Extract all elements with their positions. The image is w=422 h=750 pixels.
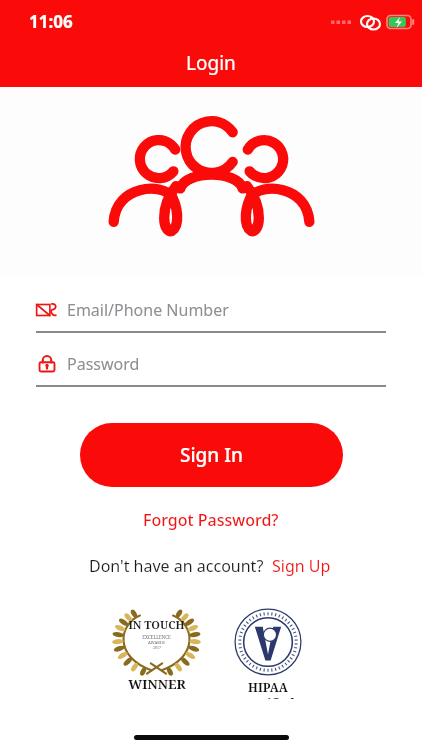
button[interactable]: Sign Up bbox=[270, 553, 333, 579]
staticText: IN TOUCH bbox=[128, 617, 185, 632]
button[interactable]: Email/Phone Number bbox=[36, 293, 386, 333]
button[interactable]: Password bbox=[36, 347, 386, 387]
button[interactable]: Sign In bbox=[80, 423, 343, 487]
staticText: EXCELLENCE bbox=[142, 634, 171, 640]
staticText: Email/Phone Number bbox=[67, 299, 229, 321]
staticText: Don't have an account? bbox=[89, 555, 264, 577]
other: In Touch Excellence Award Winner bbox=[109, 607, 204, 699]
other: The VGM Group HIPAA Certified bbox=[222, 607, 314, 699]
staticText: 11:06 bbox=[29, 10, 73, 33]
button[interactable]: Forgot Password? bbox=[135, 507, 287, 533]
staticText: Login bbox=[186, 50, 236, 76]
staticText: HIPAA Certified bbox=[222, 679, 314, 699]
staticText: AWARDS bbox=[148, 640, 165, 645]
staticText: Sign In bbox=[180, 442, 243, 468]
staticText: Sign Up bbox=[272, 555, 331, 577]
staticText: Forgot Password? bbox=[143, 509, 279, 531]
staticText: Password bbox=[67, 353, 140, 375]
staticText: WINNER bbox=[128, 675, 186, 693]
staticText: 2017 bbox=[153, 645, 161, 650]
